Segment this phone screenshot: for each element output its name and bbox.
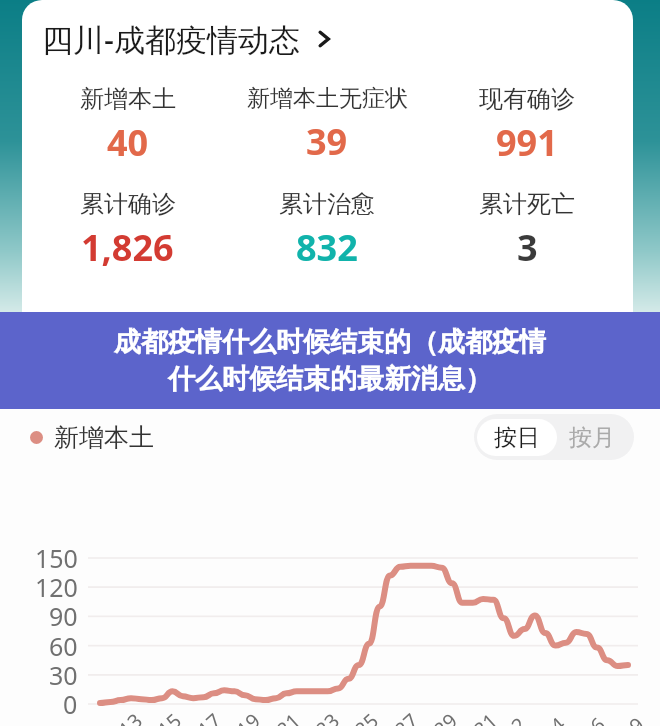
staticText: 3	[517, 223, 538, 272]
staticText: 0	[63, 687, 78, 721]
staticText: 现有确诊	[479, 84, 575, 114]
staticText: 累计死亡	[479, 189, 575, 219]
staticText: 按月	[569, 423, 615, 452]
staticText: 991	[496, 118, 558, 167]
staticText: 1,826	[81, 223, 174, 272]
staticText: 90	[49, 599, 78, 633]
staticText: 60	[49, 629, 78, 663]
other: More details	[312, 27, 336, 51]
staticText: 9.2	[493, 711, 532, 726]
staticText: 8.29	[415, 707, 463, 726]
staticText: 按日	[494, 423, 540, 452]
staticText: 新增本土无症状	[247, 84, 408, 113]
staticText: 9.4	[532, 711, 571, 726]
staticText: 8.23	[297, 707, 345, 726]
staticText: 120	[35, 570, 78, 604]
staticText: 9.9	[611, 711, 650, 726]
staticText: 9.6	[572, 711, 611, 726]
staticText: 30	[49, 658, 78, 692]
staticText: 8.13	[100, 707, 148, 726]
staticText: 累计确诊	[80, 189, 176, 219]
staticText: 成都疫情什么时候结束的（成都疫情	[114, 325, 546, 359]
staticText: 累计治愈	[279, 189, 375, 219]
staticText: 什么时候结束的最新消息）	[168, 362, 492, 396]
staticText: 四川-成都疫情动态	[42, 18, 300, 60]
staticText: 新增本土	[54, 422, 154, 453]
staticText: 832	[296, 223, 358, 272]
staticText: 39	[306, 117, 348, 166]
staticText: 8.17	[179, 707, 227, 726]
staticText: 8.25	[336, 707, 384, 726]
staticText: 8.19	[218, 707, 266, 726]
staticText: 8.15	[139, 707, 187, 726]
button[interactable]: 按月	[560, 419, 634, 456]
staticText: 40	[107, 118, 149, 167]
button[interactable]: 按日	[477, 419, 557, 456]
staticText: 新增本土	[80, 84, 176, 114]
button[interactable]: 四川-成都疫情动态	[22, 14, 633, 64]
staticText: 8.31	[455, 707, 503, 726]
staticText: 150	[35, 541, 78, 575]
staticText: 8.27	[376, 707, 424, 726]
staticText: 8.21	[258, 707, 306, 726]
